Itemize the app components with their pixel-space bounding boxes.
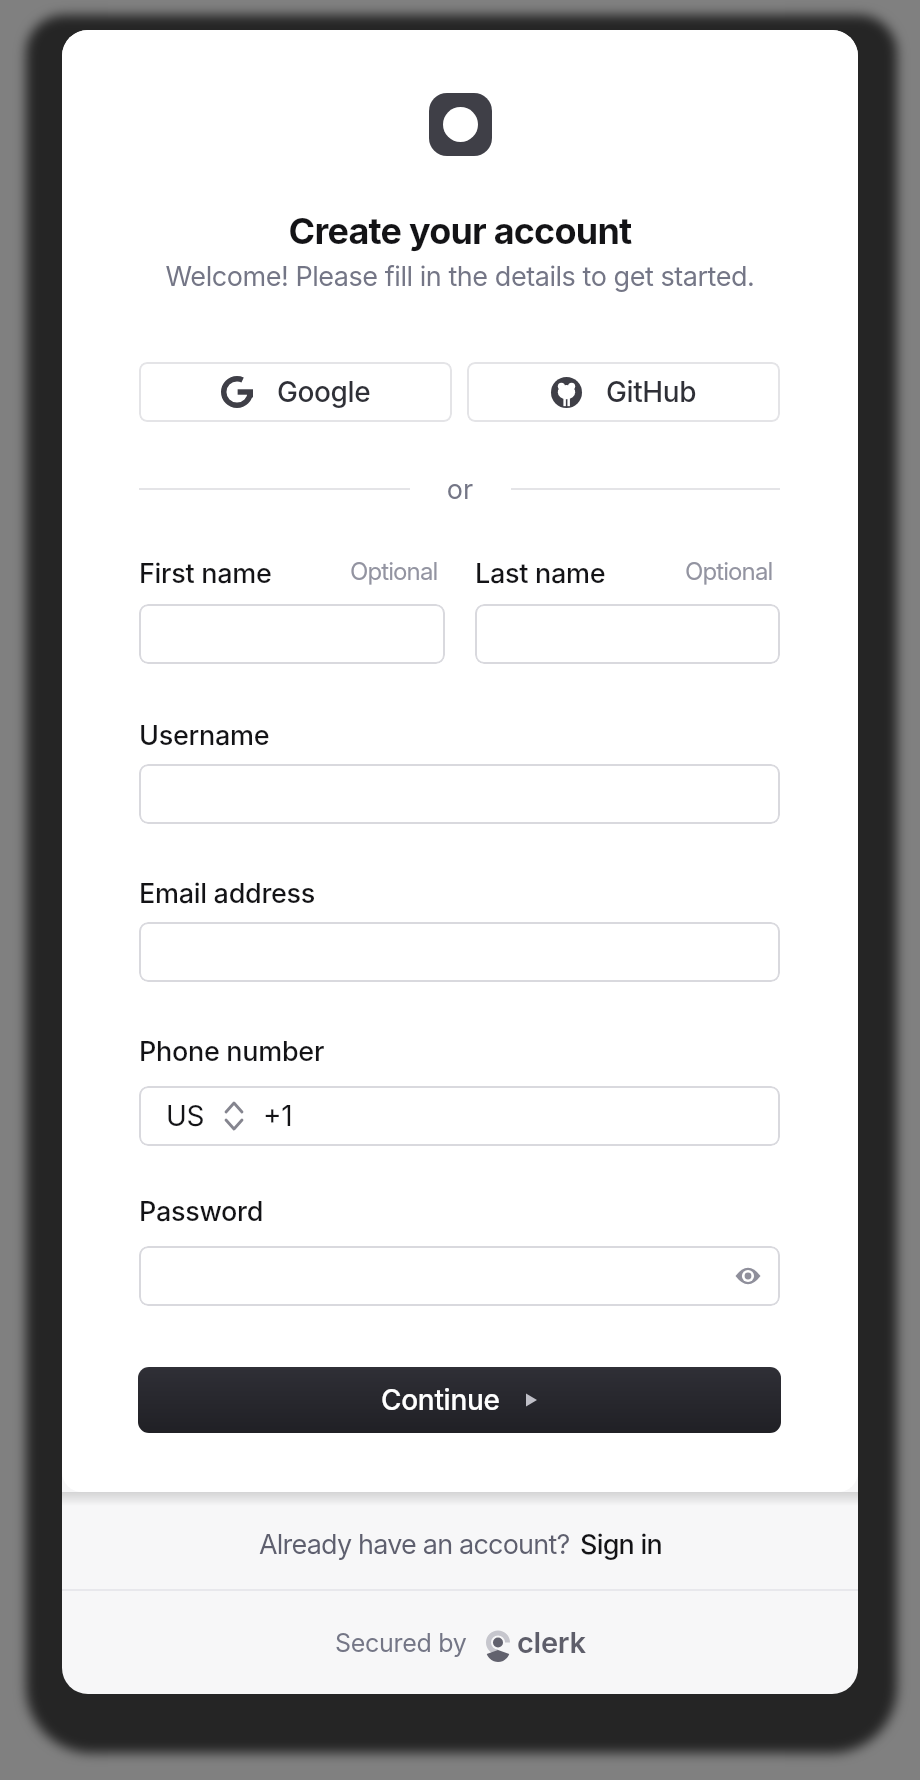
staticText: or [62,473,858,506]
staticText: +1 [263,1099,293,1133]
staticText: Create your account [62,209,858,253]
staticText: Email address [139,877,316,910]
staticText: Continue [381,1383,500,1417]
staticText: US [166,1099,205,1133]
staticText: Already have an account? [259,1528,570,1561]
staticText: Welcome! Please fill in the details to g… [62,260,858,293]
staticText: Secured by [335,1628,467,1658]
staticText: Optional [350,557,438,586]
staticText: Optional [685,557,773,586]
staticText: clerk [517,1625,586,1660]
staticText: GitHub [606,375,697,409]
staticText: Last name [475,557,606,590]
staticText: First name [139,557,272,590]
staticText: Username [139,719,270,752]
staticText: Password [139,1195,264,1228]
staticText: Phone number [139,1035,325,1068]
staticText: Sign in [580,1528,662,1561]
staticText: Google [277,375,371,409]
